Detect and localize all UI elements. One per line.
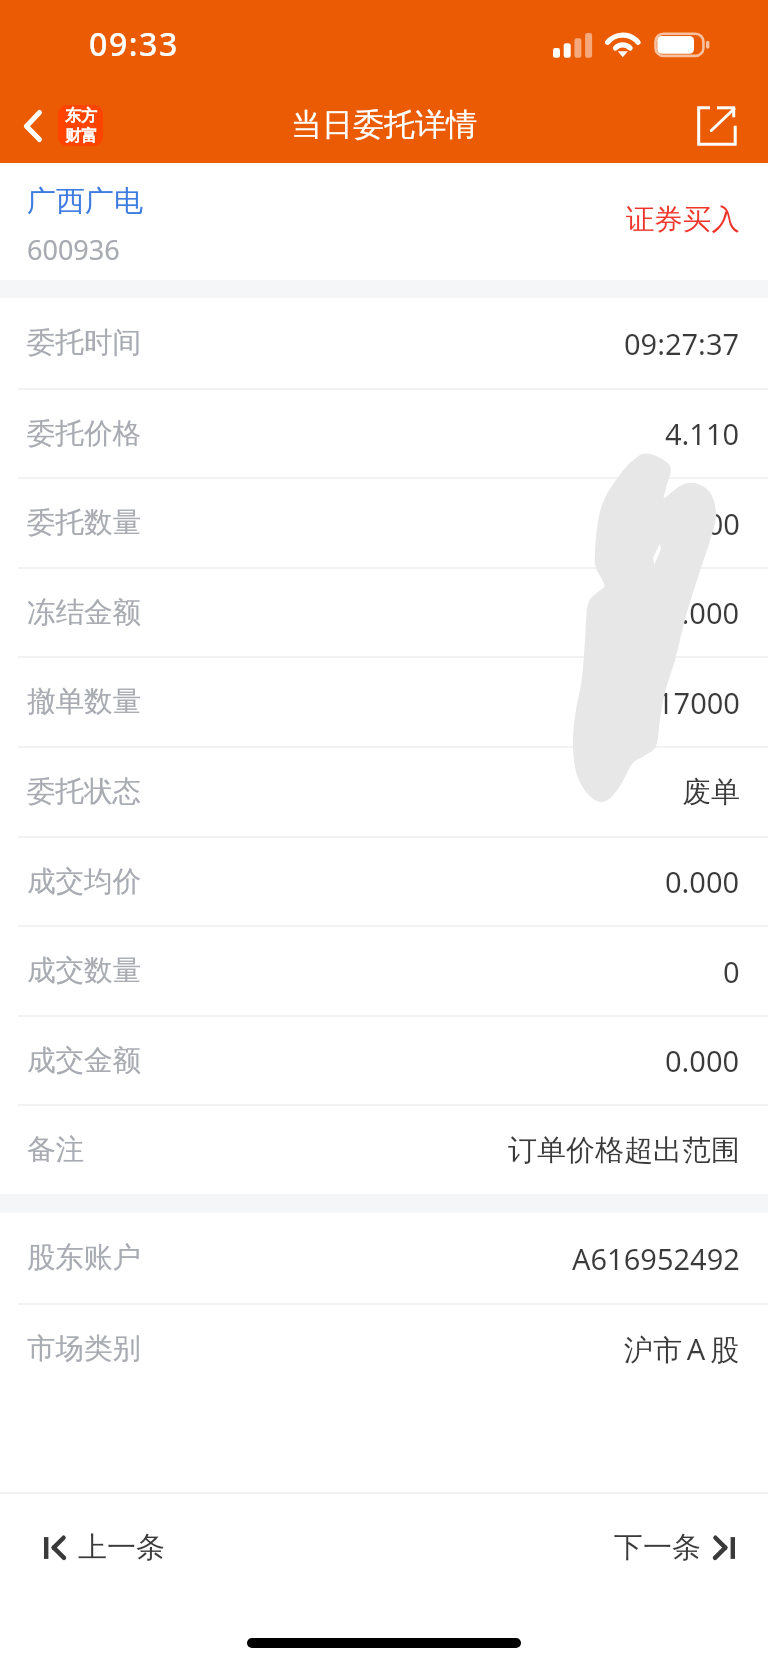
staticText: 09:27:37 bbox=[624, 324, 740, 363]
button[interactable]: 成交均价 bbox=[0, 838, 768, 925]
button[interactable]: 委托价格 bbox=[0, 390, 768, 477]
staticText: 委托状态 bbox=[27, 774, 141, 810]
button[interactable]: Back bbox=[0, 88, 113, 163]
button[interactable]: 成交金额 bbox=[0, 1017, 768, 1104]
staticText: 委托时间 bbox=[27, 325, 141, 361]
button[interactable]: 股东账户 bbox=[0, 1213, 768, 1303]
staticText: A616952492 bbox=[572, 1239, 740, 1278]
staticText: 0.000 bbox=[665, 1041, 740, 1080]
staticText: 东方 bbox=[65, 106, 97, 126]
staticText: 上一条 bbox=[78, 1529, 165, 1566]
button[interactable]: Share bbox=[666, 88, 768, 163]
staticText: 当日委托详情 bbox=[291, 105, 477, 144]
button[interactable]: 委托时间 bbox=[0, 298, 768, 388]
staticText: 撤单数量 bbox=[27, 684, 141, 720]
button[interactable]: 成交数量 bbox=[0, 927, 768, 1015]
staticText: 成交均价 bbox=[27, 864, 141, 900]
staticText: 广西广电 bbox=[27, 183, 143, 220]
staticText: 委托价格 bbox=[27, 416, 141, 452]
staticText: 600936 bbox=[27, 231, 120, 268]
button[interactable]: 委托状态 bbox=[0, 748, 768, 836]
button[interactable]: 委托数量 bbox=[0, 479, 768, 567]
staticText: 17000 bbox=[657, 683, 740, 722]
staticText: 股东账户 bbox=[27, 1240, 141, 1276]
staticText: 下一条 bbox=[614, 1529, 701, 1566]
button[interactable]: 冻结金额 bbox=[0, 569, 768, 656]
staticText: 0 bbox=[723, 952, 740, 991]
staticText: 0.000 bbox=[665, 593, 740, 632]
staticText: 成交金额 bbox=[27, 1043, 141, 1079]
button[interactable]: 下一条 bbox=[384, 1529, 768, 1566]
staticText: 0.000 bbox=[665, 862, 740, 901]
staticText: 财富 bbox=[65, 126, 97, 146]
staticText: 委托数量 bbox=[27, 505, 141, 541]
staticText: 09:33 bbox=[89, 22, 179, 66]
staticText: 证券买入 bbox=[626, 202, 740, 238]
staticText: 冻结金额 bbox=[27, 595, 141, 631]
staticText: 沪市 A 股 bbox=[624, 1329, 740, 1369]
staticText: 4.110 bbox=[665, 414, 740, 453]
button[interactable]: 撤单数量 bbox=[0, 658, 768, 746]
button[interactable]: 市场类别 bbox=[0, 1305, 768, 1392]
staticText: 订单价格超出范围 bbox=[508, 1132, 740, 1169]
staticText: 备注 bbox=[27, 1132, 84, 1168]
staticText: 17000 bbox=[657, 504, 740, 543]
button[interactable]: 上一条 bbox=[0, 1529, 384, 1566]
button[interactable]: 备注 bbox=[0, 1106, 768, 1194]
staticText: 成交数量 bbox=[27, 953, 141, 989]
staticText: 市场类别 bbox=[27, 1331, 141, 1367]
staticText: 废单 bbox=[682, 774, 740, 811]
